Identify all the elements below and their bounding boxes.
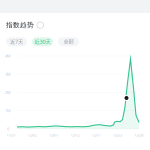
staticText: 近7天 xyxy=(10,38,23,45)
staticText: 4M xyxy=(5,53,11,59)
staticText: 0 xyxy=(7,126,9,132)
staticText: 12/07 xyxy=(49,132,58,138)
staticText: 12/02 xyxy=(28,132,37,138)
staticText: 3M xyxy=(5,72,11,77)
staticText: 指数趋势 xyxy=(6,21,34,29)
button[interactable]: 近7天 xyxy=(6,37,27,46)
staticText: 12/12 xyxy=(70,132,79,138)
staticText: 12/28 xyxy=(134,132,143,138)
staticText: 近30天 xyxy=(34,38,50,45)
staticText: 12/23 xyxy=(113,132,122,138)
staticText: 1M xyxy=(5,108,11,113)
staticText: 2M xyxy=(5,90,11,95)
staticText: 12/17 xyxy=(92,132,101,138)
staticText: 全部 xyxy=(63,38,73,45)
button[interactable]: 说明 xyxy=(37,22,43,28)
staticText: 11/27 xyxy=(6,132,15,138)
button[interactable]: 全部 xyxy=(58,37,79,46)
button[interactable]: 近30天 xyxy=(32,37,53,46)
